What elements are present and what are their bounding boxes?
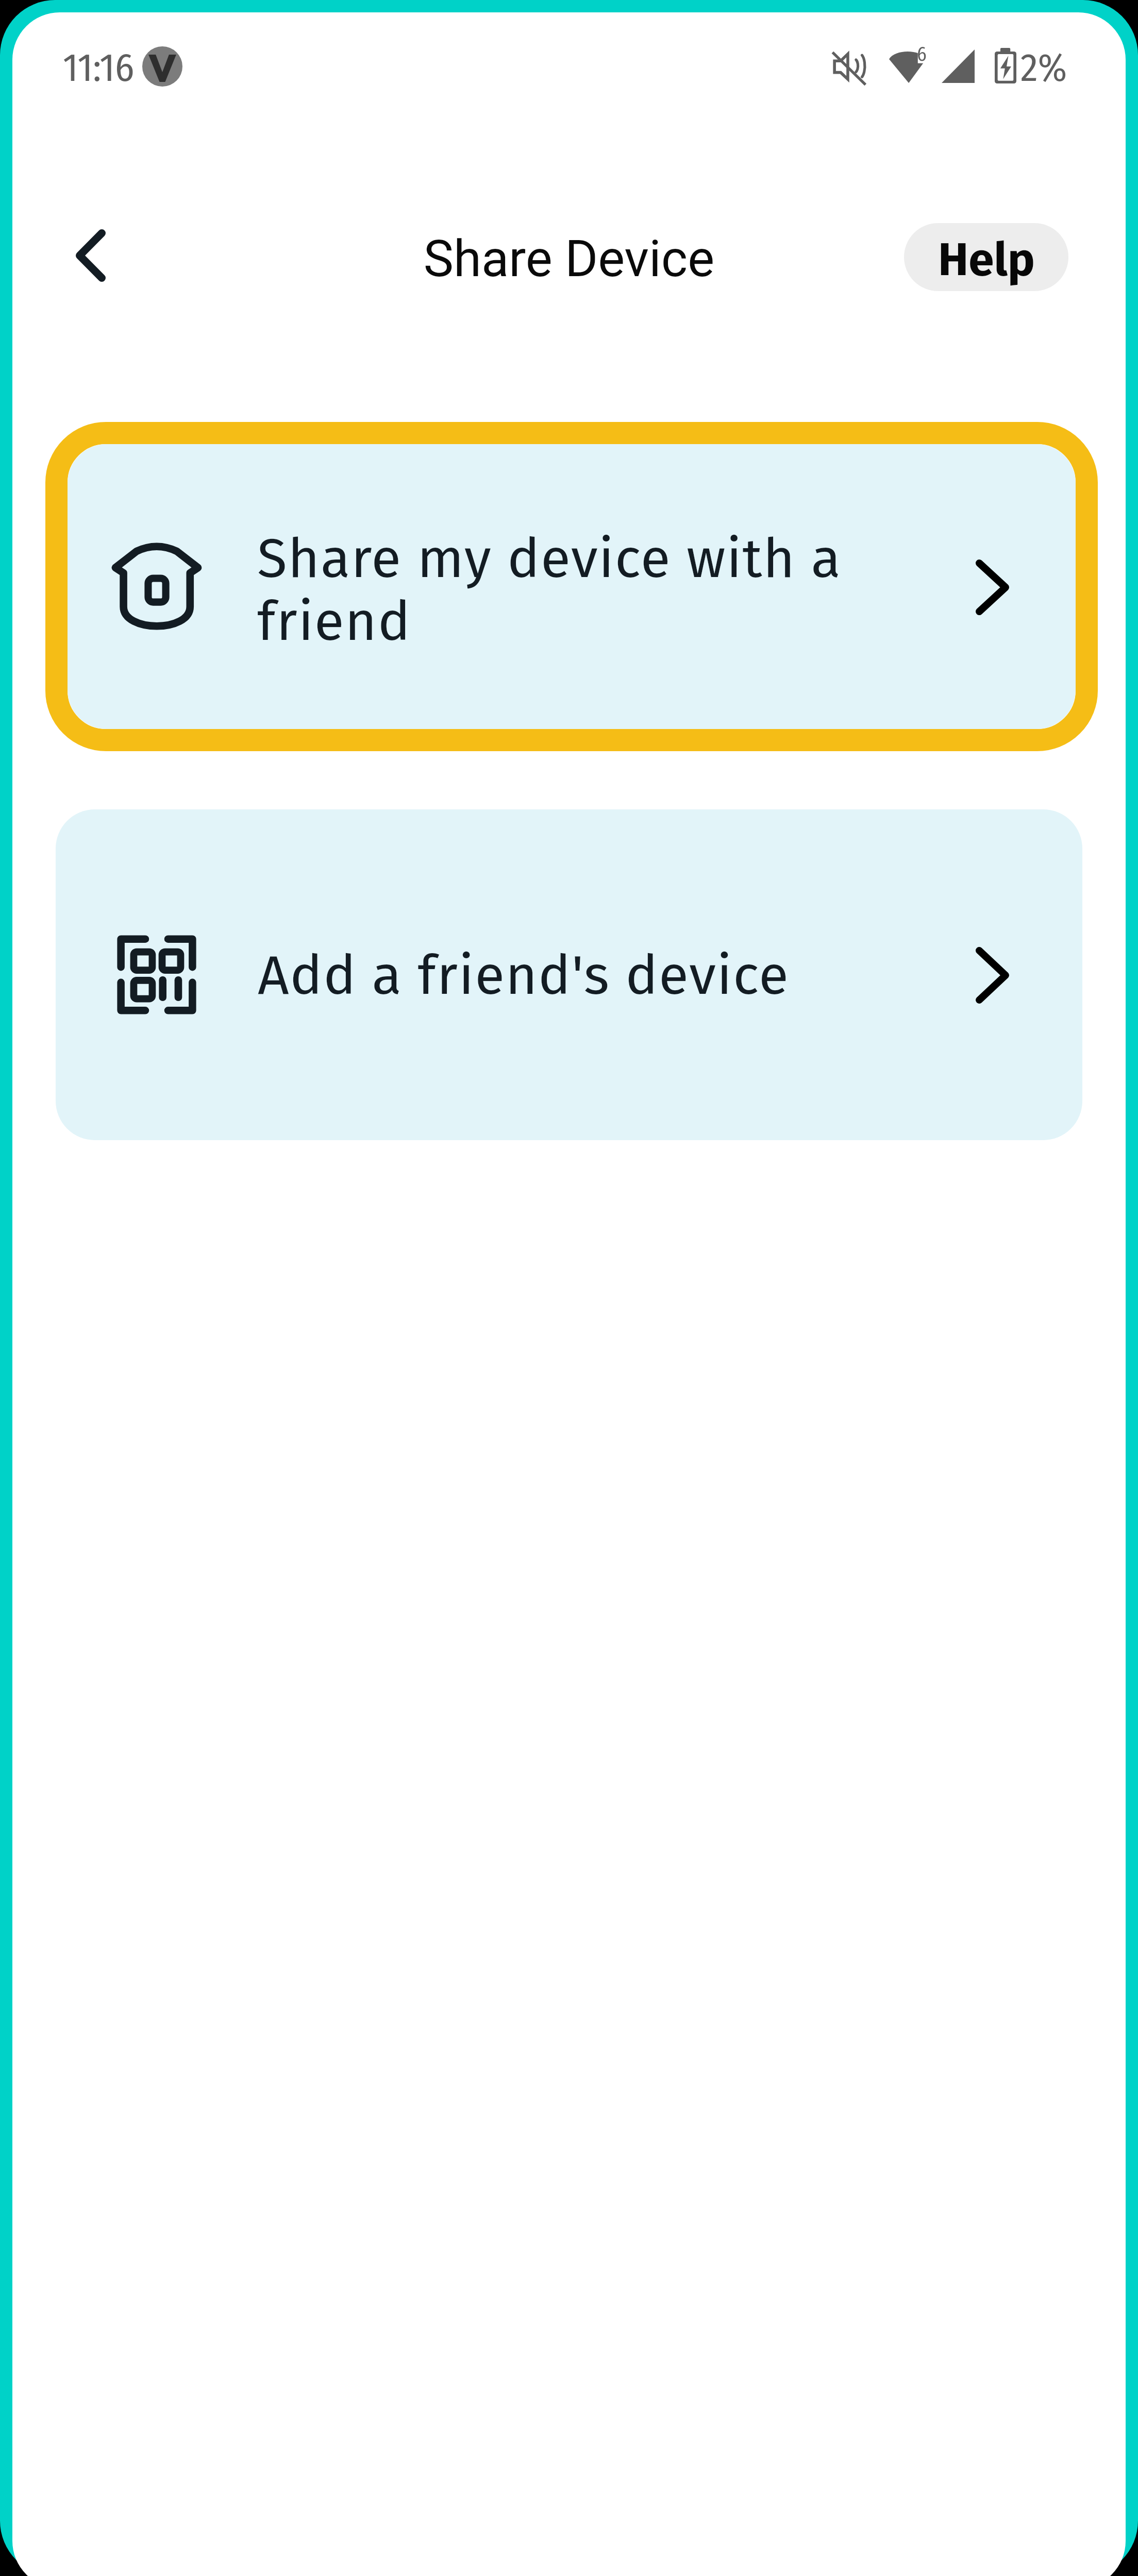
staticText: Add a friend's device (258, 945, 928, 1008)
button[interactable]: Back (49, 214, 132, 297)
staticText: Help (938, 232, 1035, 287)
button[interactable]: Add a friend's device (56, 809, 1082, 1140)
staticText: 6 (917, 43, 927, 66)
button[interactable]: Share my device with a friend (68, 444, 1076, 729)
staticText: 2% (1020, 44, 1067, 91)
staticText: Share my device with a friend (257, 528, 907, 654)
button[interactable]: Help (904, 223, 1068, 291)
staticText: 11:16 (63, 44, 135, 91)
staticText: Share Device (0, 227, 1138, 289)
